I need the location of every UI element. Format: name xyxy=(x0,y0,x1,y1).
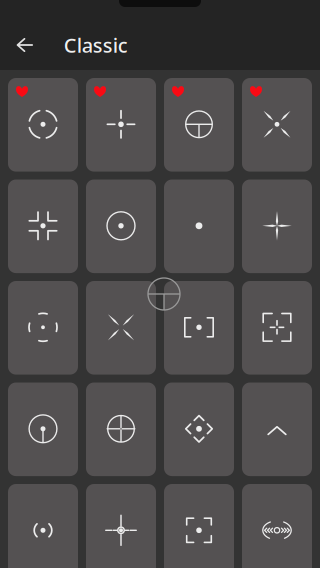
button[interactable]: Reticle 5 xyxy=(8,179,78,273)
button[interactable]: Reticle 19 xyxy=(164,484,234,568)
button[interactable]: Reticle 10 xyxy=(86,281,156,375)
button[interactable]: Reticle 12 xyxy=(242,281,312,375)
button[interactable]: Reticle 17 xyxy=(8,484,78,568)
button[interactable]: Reticle 7 xyxy=(164,179,234,273)
button[interactable]: Reticle 6 xyxy=(86,179,156,273)
button[interactable]: Reticle 15 xyxy=(164,382,234,476)
button[interactable]: Back xyxy=(0,20,64,70)
button[interactable]: Reticle 18 xyxy=(86,484,156,568)
button[interactable]: Reticle 4 xyxy=(242,78,312,172)
button[interactable]: Reticle 16 xyxy=(242,382,312,476)
button[interactable]: Reticle 2 xyxy=(86,78,156,172)
button[interactable]: Reticle 11 xyxy=(164,281,234,375)
button[interactable]: Reticle 14 xyxy=(86,382,156,476)
button[interactable]: Reticle 13 xyxy=(8,382,78,476)
button[interactable]: Reticle 3 xyxy=(164,78,234,172)
button[interactable]: Reticle 1 xyxy=(8,78,78,172)
button[interactable]: Reticle 9 xyxy=(8,281,78,375)
staticText: Classic xyxy=(64,32,128,58)
button[interactable]: Reticle 8 xyxy=(242,179,312,273)
button[interactable]: Reticle 20 xyxy=(242,484,312,568)
